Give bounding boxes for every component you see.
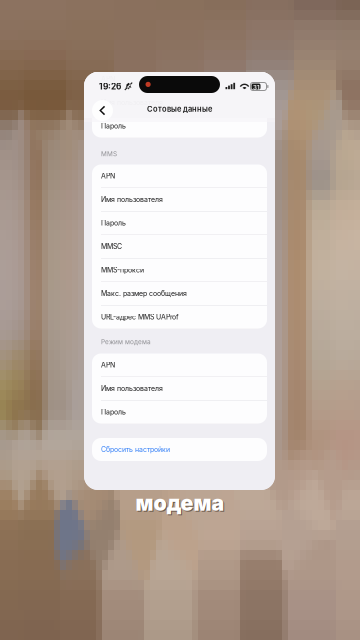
staticText: Имя пользователя xyxy=(101,384,163,393)
staticText: Пароль xyxy=(101,408,126,416)
staticText: Имя пользователя xyxy=(101,195,163,204)
button[interactable]: Сбросить настройки xyxy=(92,438,267,461)
button[interactable]: Имя пользователя xyxy=(92,188,267,211)
staticText: модема xyxy=(135,490,224,516)
staticText: MMS-прокси xyxy=(101,266,144,274)
button[interactable]: Back xyxy=(92,100,113,121)
staticText: APN xyxy=(101,361,115,369)
staticText: APN xyxy=(101,172,115,180)
button[interactable]: Пароль xyxy=(92,400,267,423)
button[interactable]: Пароль xyxy=(92,211,267,234)
staticText: Пароль xyxy=(101,122,126,130)
staticText: 19:26 xyxy=(99,81,121,91)
staticText: Сбросить настройки xyxy=(101,445,170,454)
staticText: Пароль xyxy=(101,219,126,227)
staticText: URL-адрес MMS UAProf xyxy=(101,313,179,321)
button[interactable]: Имя пользователя xyxy=(92,91,267,114)
staticText: Макс. размер сообщения xyxy=(101,289,187,298)
button[interactable]: MMS-прокси xyxy=(92,258,267,281)
button[interactable]: APN xyxy=(92,164,267,187)
staticText: Имя пользователя xyxy=(101,98,163,107)
staticText: 31 xyxy=(253,84,260,91)
staticText: Сотовые данные xyxy=(147,104,212,113)
button[interactable]: Макс. размер сообщения xyxy=(92,282,267,305)
button[interactable]: APN xyxy=(92,67,267,90)
button[interactable]: APN xyxy=(92,353,267,376)
button[interactable]: URL-адрес MMS UAProf xyxy=(92,305,267,328)
button[interactable]: Пароль xyxy=(92,114,267,137)
staticText: Режим модема xyxy=(101,338,151,346)
button[interactable]: MMSC xyxy=(92,235,267,258)
staticText: MMS xyxy=(101,150,117,158)
staticText: модема xyxy=(136,491,225,517)
staticText: MMSC xyxy=(101,242,122,251)
button[interactable]: Имя пользователя xyxy=(92,377,267,400)
